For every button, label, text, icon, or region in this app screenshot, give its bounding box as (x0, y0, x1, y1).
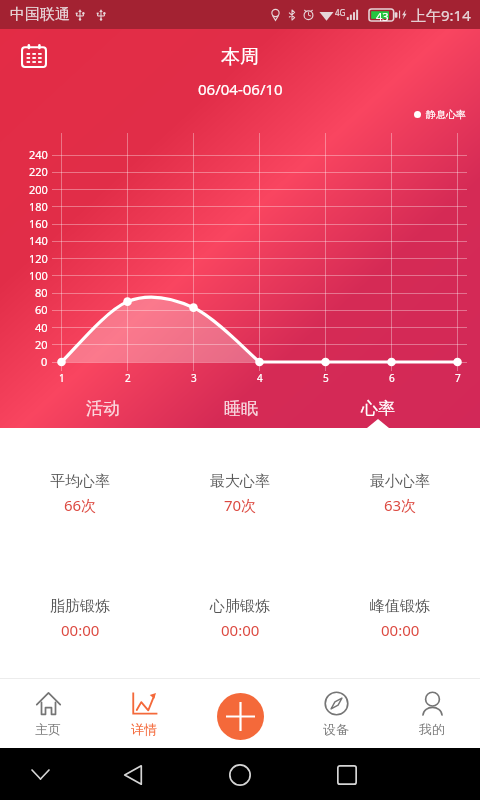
staticText: 3 (191, 371, 197, 385)
staticText: 180 (29, 199, 48, 214)
staticText: 80 (35, 285, 48, 300)
button[interactable]: Back (116, 748, 150, 800)
staticText: 240 (29, 147, 48, 162)
staticText: 平均心率 (50, 472, 110, 491)
staticText: 40 (35, 320, 48, 335)
button[interactable]: 设备 (288, 678, 384, 748)
button[interactable]: 脂肪锻炼 (0, 597, 160, 640)
button[interactable]: 我的 (384, 678, 480, 748)
button[interactable]: Add (217, 693, 264, 740)
button[interactable]: 最小心率 (320, 472, 480, 515)
staticText: 心率 (361, 398, 395, 419)
staticText: 6 (389, 371, 395, 385)
staticText: 1 (59, 371, 65, 385)
staticText: 220 (29, 164, 48, 179)
staticText: 峰值锻炼 (370, 597, 430, 616)
staticText: 上午9:14 (411, 5, 471, 25)
staticText: 4G (335, 7, 346, 18)
staticText: 7 (455, 371, 461, 385)
button[interactable]: Calendar (14, 36, 54, 76)
button[interactable]: 活动 (34, 398, 172, 428)
staticText: 2 (125, 371, 131, 385)
staticText: 60 (35, 302, 48, 317)
button[interactable]: Hide keyboard (24, 748, 57, 800)
staticText: 20 (35, 337, 48, 352)
staticText: 160 (29, 216, 48, 231)
staticText: 63次 (384, 495, 417, 515)
staticText: 本周 (221, 45, 259, 69)
staticText: 活动 (86, 398, 120, 419)
staticText: 4 (257, 371, 263, 385)
button[interactable]: 平均心率 (0, 472, 160, 515)
button[interactable]: 最大心率 (160, 472, 320, 515)
staticText: 我的 (419, 721, 445, 737)
staticText: 120 (29, 251, 48, 266)
staticText: 140 (29, 233, 48, 248)
staticText: 中国联通 (10, 5, 70, 24)
button[interactable]: 心肺锻炼 (160, 597, 320, 640)
staticText: 0 (41, 354, 48, 369)
staticText: 43 (376, 9, 389, 21)
button[interactable]: 详情 (96, 678, 192, 748)
staticText: 最大心率 (210, 472, 270, 491)
staticText: 设备 (323, 721, 349, 737)
button[interactable]: Home (223, 748, 257, 800)
staticText: 06/04-06/10 (198, 79, 283, 99)
staticText: 脂肪锻炼 (50, 597, 110, 616)
staticText: 00:00 (221, 620, 260, 640)
staticText: 静息心率 (426, 108, 466, 121)
staticText: 200 (29, 182, 48, 197)
button[interactable]: Recent apps (330, 748, 364, 800)
button[interactable]: 峰值锻炼 (320, 597, 480, 640)
staticText: 睡眠 (224, 398, 258, 419)
staticText: 心肺锻炼 (210, 597, 270, 616)
staticText: 100 (29, 268, 48, 283)
button[interactable]: 心率 (309, 398, 446, 428)
staticText: 00:00 (381, 620, 420, 640)
staticText: 70次 (224, 495, 257, 515)
button[interactable]: 睡眠 (172, 398, 309, 428)
staticText: 详情 (131, 721, 157, 737)
staticText: 5 (323, 371, 329, 385)
button[interactable]: 主页 (0, 678, 96, 748)
staticText: 主页 (35, 721, 61, 737)
staticText: 66次 (64, 495, 97, 515)
staticText: 00:00 (61, 620, 100, 640)
staticText: 最小心率 (370, 472, 430, 491)
